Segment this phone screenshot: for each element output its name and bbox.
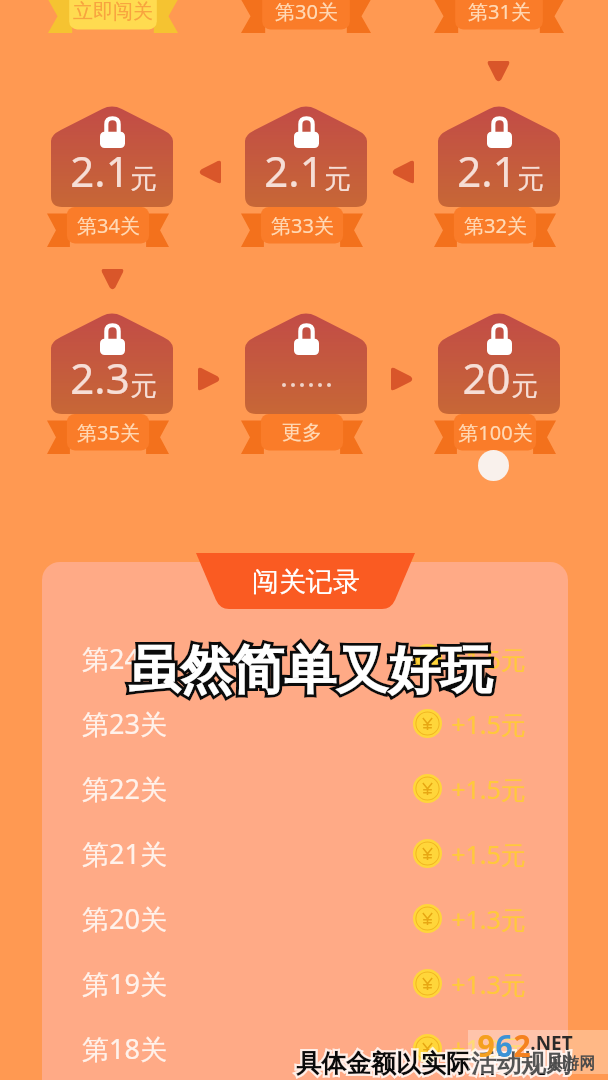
button[interactable]: 2.1 bbox=[438, 104, 560, 246]
staticText: +1.5元 bbox=[451, 837, 526, 871]
other: Coin reward bbox=[413, 709, 442, 738]
button[interactable]: 第23关 bbox=[42, 691, 568, 756]
staticText: 乐游网 bbox=[547, 1054, 595, 1074]
staticText: 第22关 bbox=[82, 770, 167, 807]
staticText: 闯关记录 bbox=[252, 565, 360, 599]
staticText: 第24关 bbox=[82, 640, 167, 677]
staticText: +1.3元 bbox=[451, 967, 526, 1001]
staticText: +1.5元 bbox=[451, 707, 526, 741]
staticText: 立即闯关 bbox=[73, 0, 153, 24]
staticText: 第21关 bbox=[82, 835, 167, 872]
staticText: 第100关 bbox=[458, 419, 533, 446]
button[interactable]: 更多 bbox=[245, 311, 367, 453]
staticText: 第33关 bbox=[271, 212, 334, 239]
staticText: 具体金额以实际活动规则 bbox=[296, 1048, 571, 1079]
other: Coin reward bbox=[413, 839, 442, 868]
staticText: 2 bbox=[513, 1025, 531, 1066]
other: Coin reward bbox=[413, 969, 442, 998]
staticText: .NET bbox=[530, 1030, 573, 1056]
staticText: 具体金额以实际活动规则 bbox=[296, 1048, 571, 1079]
staticText: 第31关 bbox=[468, 0, 531, 25]
staticText: 2.1 bbox=[457, 142, 517, 199]
staticText: 更多 bbox=[282, 420, 322, 445]
button[interactable]: 第19关 bbox=[42, 951, 568, 1016]
staticText: 第32关 bbox=[464, 212, 527, 239]
button[interactable]: 第24关 bbox=[42, 626, 568, 691]
button[interactable]: 立即闯关 bbox=[48, 0, 178, 33]
button[interactable]: 第30关 bbox=[241, 0, 371, 33]
staticText: 20 bbox=[462, 349, 511, 406]
staticText: 6 bbox=[495, 1025, 513, 1066]
button[interactable]: 2.3 bbox=[51, 311, 173, 453]
button[interactable]: 第18关 bbox=[42, 1016, 568, 1080]
staticText: 虽然简单又好玩 bbox=[128, 638, 492, 704]
other: Coin reward bbox=[413, 774, 442, 803]
staticText: +1.5元 bbox=[451, 642, 526, 676]
staticText: +1.5元 bbox=[451, 772, 526, 806]
button[interactable]: 第20关 bbox=[42, 886, 568, 951]
staticText: 第35关 bbox=[77, 419, 140, 446]
staticText: 元 bbox=[130, 369, 157, 403]
other: Coin reward bbox=[413, 644, 442, 673]
staticText: 2.1 bbox=[70, 142, 130, 199]
staticText: 第34关 bbox=[77, 212, 140, 239]
staticText: 虽然简单又好玩 bbox=[128, 638, 492, 704]
staticText: 2.1 bbox=[264, 142, 324, 199]
staticText: +1.3元 bbox=[451, 902, 526, 936]
staticText: 9 bbox=[477, 1025, 495, 1066]
button[interactable]: 2.1 bbox=[51, 104, 173, 246]
staticText: 2.3 bbox=[70, 349, 130, 406]
button[interactable]: 闯关记录 bbox=[196, 553, 415, 609]
staticText: 元 bbox=[130, 162, 157, 196]
staticText: 第19关 bbox=[82, 965, 167, 1002]
button[interactable]: 2.1 bbox=[245, 104, 367, 246]
staticText: +1.3元 bbox=[451, 1031, 526, 1065]
button[interactable]: 第31关 bbox=[434, 0, 564, 33]
staticText: 第18关 bbox=[82, 1030, 167, 1067]
other: Coin reward bbox=[413, 1034, 442, 1063]
staticText: 元 bbox=[517, 162, 544, 196]
staticText: 第20关 bbox=[82, 900, 167, 937]
staticText: 第23关 bbox=[82, 705, 167, 742]
button[interactable]: 20 bbox=[438, 311, 560, 453]
staticText: 元 bbox=[324, 162, 351, 196]
staticText: 第30关 bbox=[275, 0, 338, 25]
staticText: 元 bbox=[511, 369, 538, 403]
button[interactable]: 第22关 bbox=[42, 756, 568, 821]
other: Coin reward bbox=[413, 904, 442, 933]
button[interactable]: 第21关 bbox=[42, 821, 568, 886]
